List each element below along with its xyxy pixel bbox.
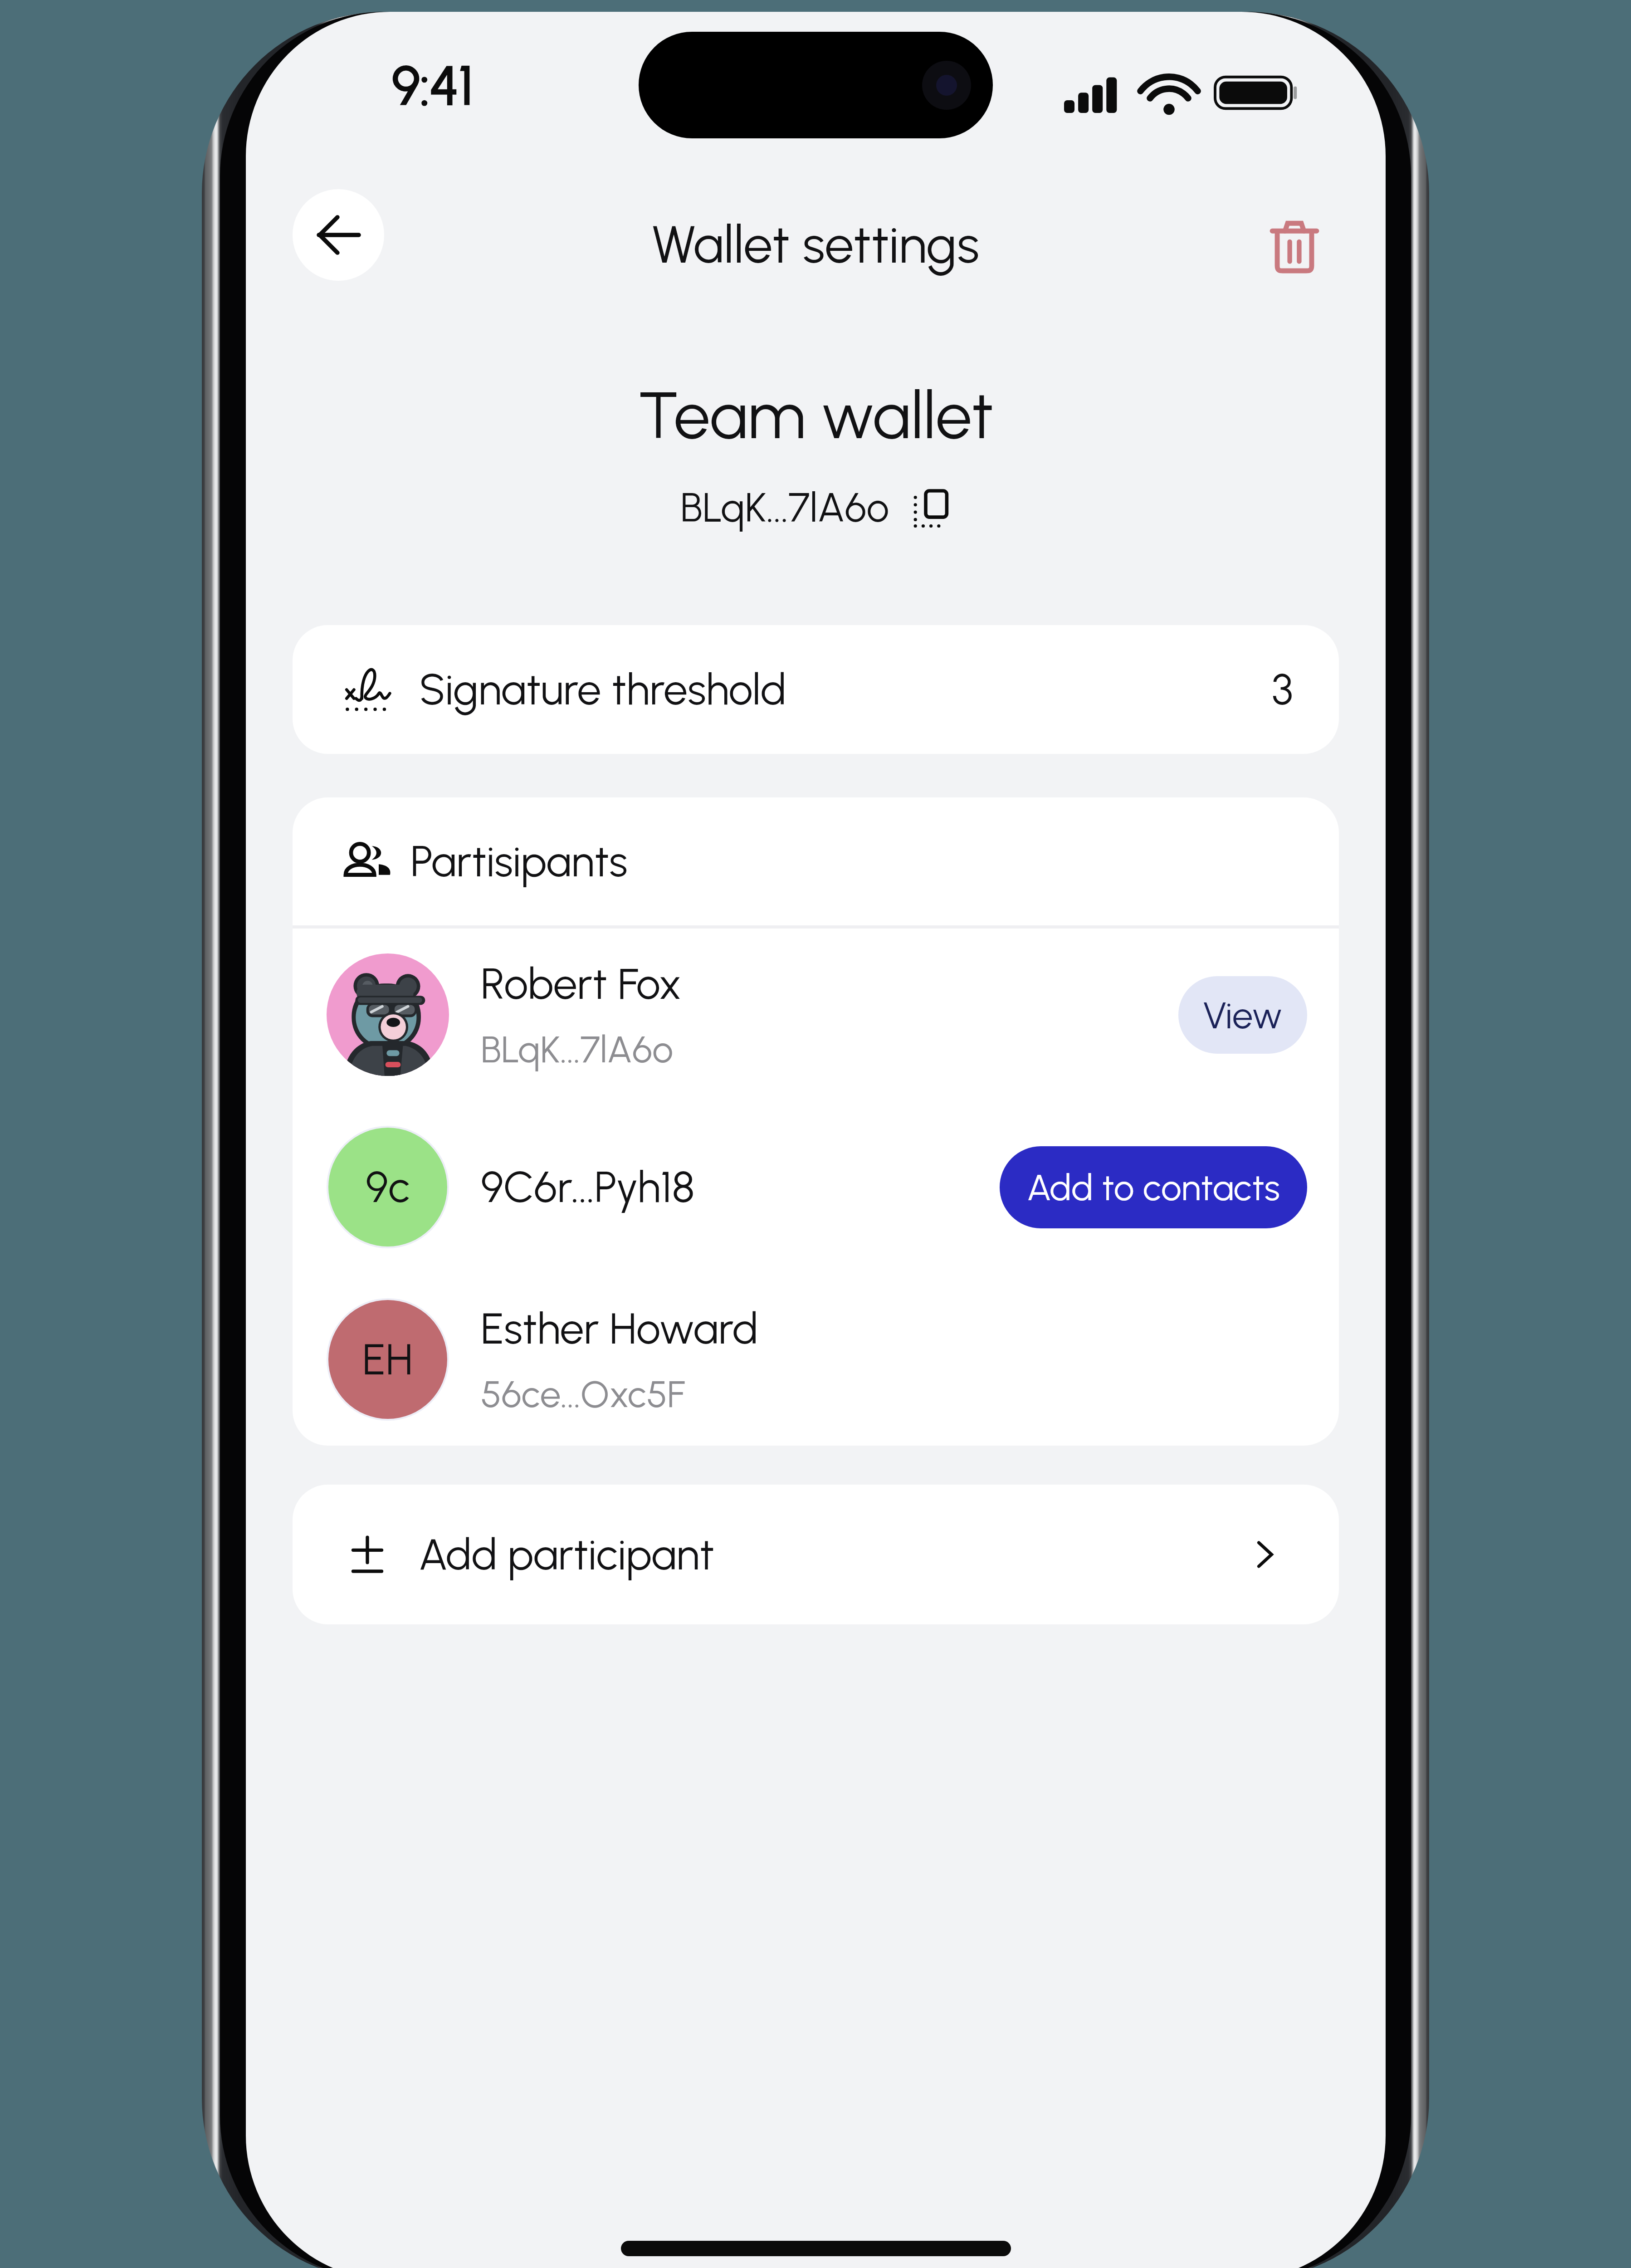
staticText: 9c [366,1161,410,1213]
staticText: 9:41 [392,54,474,118]
staticText: Partisipants [410,836,628,887]
button[interactable]: View [1178,976,1307,1054]
staticText: 3 [1272,664,1293,715]
staticText: EH [362,1334,413,1385]
staticText: Add participant [419,1529,714,1580]
staticText: View [1203,993,1283,1037]
staticText: BLqK...7lA6o [481,1027,674,1071]
button[interactable]: Signature threshold [293,625,1339,754]
button[interactable]: Copy address [908,486,951,529]
button[interactable]: Add participant [293,1485,1339,1624]
staticText: Robert Fox [481,958,682,1010]
staticText: 9C6r...Pyh18 [481,1161,695,1213]
staticText: Esther Howard [481,1303,758,1354]
button[interactable]: Delete wallet [1251,203,1338,289]
button[interactable]: Back [293,189,384,281]
staticText: Signature threshold [419,664,786,715]
button[interactable]: Add to contacts [1000,1146,1307,1228]
button[interactable]: 9c [293,1101,1339,1273]
staticText: Team wallet [638,376,994,455]
staticText: 56ce...Oxc5F [481,1372,685,1416]
button[interactable]: Robert Fox [293,929,1339,1101]
button[interactable]: EH [293,1273,1339,1446]
staticText: BLqK...7lA6o [680,483,889,532]
staticText: Add to contacts [1027,1166,1280,1209]
staticText: Wallet settings [652,213,980,276]
